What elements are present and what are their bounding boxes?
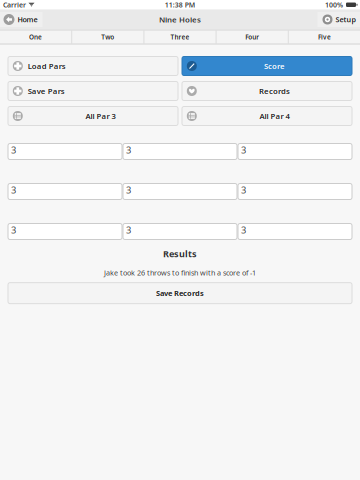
button[interactable]: Load Pars	[8, 56, 178, 75]
button[interactable]: Score	[123, 143, 237, 159]
button[interactable]: Score	[8, 223, 122, 239]
button[interactable]: Setup	[317, 12, 360, 27]
staticText: 3	[11, 144, 16, 156]
staticText: Setup	[335, 15, 356, 24]
staticText: 3	[126, 184, 131, 196]
button[interactable]: Score	[182, 56, 352, 75]
staticText: Jake took 26 throws to finish with a sco…	[104, 268, 256, 278]
button[interactable]: Records	[182, 81, 352, 100]
button[interactable]: Score	[123, 183, 237, 199]
button[interactable]: Score	[8, 143, 122, 159]
staticText: Carrier	[3, 0, 26, 9]
staticText: Save Records	[156, 288, 204, 298]
button[interactable]: Score	[123, 223, 237, 239]
staticText: 3	[126, 224, 131, 236]
button[interactable]: Home	[0, 12, 42, 27]
button[interactable]: One	[0, 29, 71, 44]
staticText: Two	[101, 33, 114, 41]
button[interactable]: Score	[8, 183, 122, 199]
button[interactable]: Two	[72, 29, 143, 44]
staticText: Nine Holes	[159, 14, 201, 25]
staticText: 3	[241, 184, 246, 196]
staticText: 3	[241, 144, 246, 156]
staticText: Home	[17, 15, 37, 24]
button[interactable]: Save Pars	[8, 81, 178, 100]
staticText: 3	[126, 144, 131, 156]
staticText: Four	[245, 33, 259, 41]
staticText: All Par 3	[85, 111, 115, 121]
staticText: 3	[241, 224, 246, 236]
staticText: All Par 4	[259, 111, 289, 121]
staticText: 100%	[325, 0, 343, 9]
staticText: Three	[170, 33, 189, 41]
staticText: One	[29, 33, 42, 41]
button[interactable]: All Par 3	[8, 106, 178, 125]
button[interactable]: Four	[217, 29, 288, 44]
button[interactable]: Five	[289, 29, 360, 44]
staticText: Five	[318, 33, 331, 41]
staticText: Results	[163, 247, 197, 260]
staticText: Load Pars	[28, 61, 66, 71]
staticText: 3	[11, 224, 16, 236]
button[interactable]: Three	[144, 29, 216, 44]
staticText: 11:38 PM	[165, 0, 195, 9]
staticText: Save Pars	[28, 86, 65, 96]
staticText: Records	[259, 86, 290, 96]
staticText: Score	[264, 61, 285, 71]
button[interactable]: Save Records	[8, 283, 352, 304]
button[interactable]: Score	[238, 223, 352, 239]
button[interactable]: All Par 4	[182, 106, 352, 125]
button[interactable]: Score	[238, 143, 352, 159]
button[interactable]: Score	[238, 183, 352, 199]
staticText: 3	[11, 184, 16, 196]
